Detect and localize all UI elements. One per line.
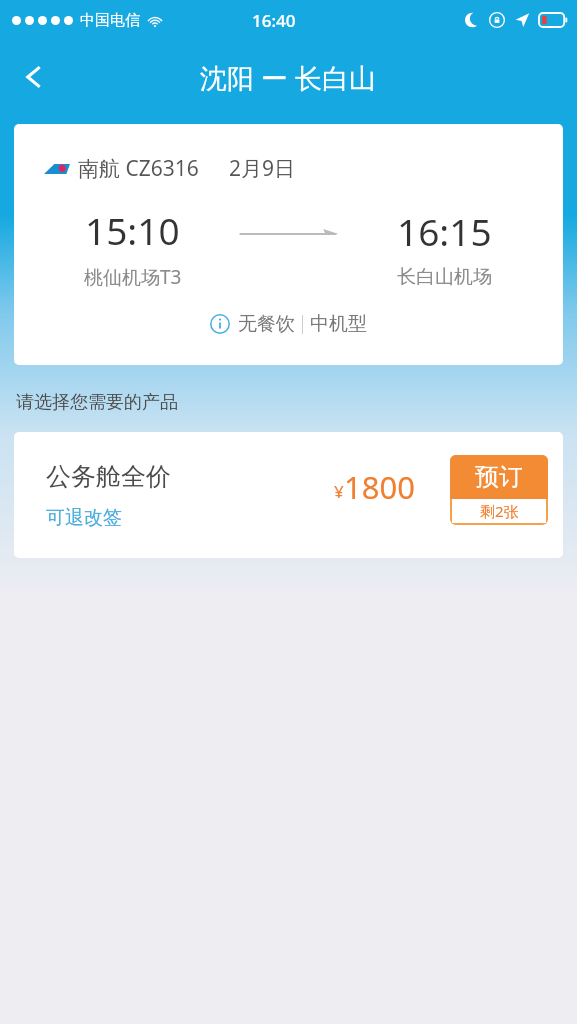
staticText: 沈阳 ー 长白山	[200, 59, 377, 96]
staticText: 长白山机场	[397, 265, 492, 289]
staticText: 2月9日	[229, 154, 296, 183]
button[interactable]: 南航 CZ6316	[14, 124, 563, 365]
button[interactable]: 公务舱全价	[14, 432, 563, 558]
staticText: 南航 CZ6316	[78, 154, 199, 183]
staticText: 桃仙机场T3	[84, 264, 182, 290]
staticText: 请选择您需要的产品	[16, 391, 178, 414]
staticText: 中国电信	[80, 11, 140, 30]
button[interactable]: 预订	[450, 455, 548, 525]
staticText: 公务舱全价	[46, 461, 171, 492]
staticText: 无餐饮	[238, 312, 295, 336]
staticText: 1800	[344, 466, 415, 508]
staticText: ¥	[334, 480, 344, 503]
staticText: 中机型	[310, 312, 367, 336]
staticText: 15:10	[85, 205, 180, 255]
staticText: 预订	[475, 462, 523, 492]
staticText: 16:15	[397, 206, 492, 256]
button[interactable]: Back	[6, 49, 62, 105]
staticText: 16:40	[252, 9, 296, 32]
staticText: 可退改签	[46, 506, 122, 530]
staticText: 剩2张	[480, 501, 519, 521]
